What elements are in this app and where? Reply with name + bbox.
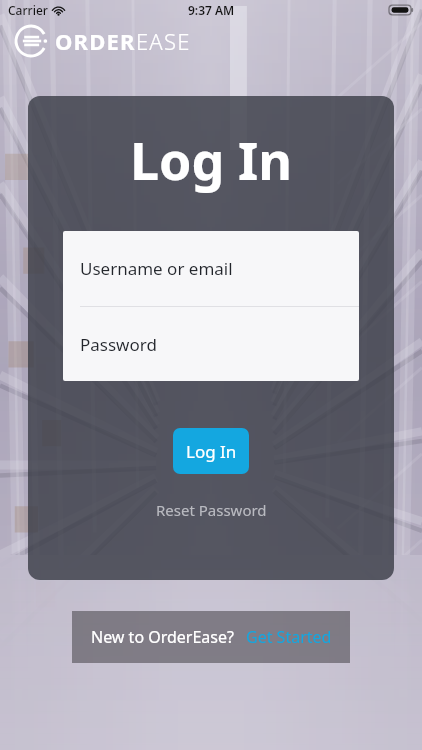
- staticText: Log In: [130, 124, 292, 195]
- staticText: Get Started: [246, 626, 332, 648]
- staticText: Carrier: [8, 2, 48, 18]
- staticText: Reset Password: [156, 500, 267, 520]
- button[interactable]: Password: [63, 307, 359, 381]
- button[interactable]: Log In: [173, 428, 249, 474]
- other: OrderEase logo: [14, 24, 48, 58]
- button[interactable]: Username or email: [63, 231, 359, 306]
- staticText: New to OrderEase?: [91, 626, 234, 648]
- staticText: EASE: [136, 26, 191, 56]
- button[interactable]: New to OrderEase?: [72, 611, 350, 663]
- staticText: 9:37 AM: [188, 2, 235, 18]
- button[interactable]: Reset Password: [146, 496, 277, 524]
- staticText: ORDER: [55, 26, 136, 56]
- staticText: Username or email: [80, 257, 233, 280]
- staticText: Log In: [186, 440, 237, 463]
- staticText: Password: [80, 333, 157, 356]
